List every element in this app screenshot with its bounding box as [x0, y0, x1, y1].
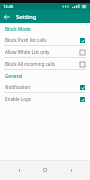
staticText: Block Mode: [5, 26, 31, 32]
staticText: Enable Logs: [5, 96, 76, 102]
staticText: 12:48: [3, 4, 14, 9]
staticText: Allow White List only: [5, 49, 76, 55]
button[interactable]: Enable Logs: [0, 93, 90, 104]
button[interactable]: Block Push list calls: [0, 34, 90, 45]
staticText: Setting: [16, 13, 37, 21]
button[interactable]: Block All incoming calls: [0, 58, 90, 69]
button[interactable]: Recent apps: [64, 163, 78, 177]
staticText: Notification: [5, 84, 76, 90]
button[interactable]: Back: [12, 163, 26, 177]
button[interactable]: Allow White List only: [0, 46, 90, 57]
button[interactable]: Home: [38, 163, 52, 177]
button[interactable]: Notification: [0, 81, 90, 92]
staticText: Block All incoming calls: [5, 61, 76, 67]
button[interactable]: Back: [0, 10, 13, 23]
staticText: General: [5, 73, 23, 79]
staticText: Block Push list calls: [5, 37, 76, 43]
